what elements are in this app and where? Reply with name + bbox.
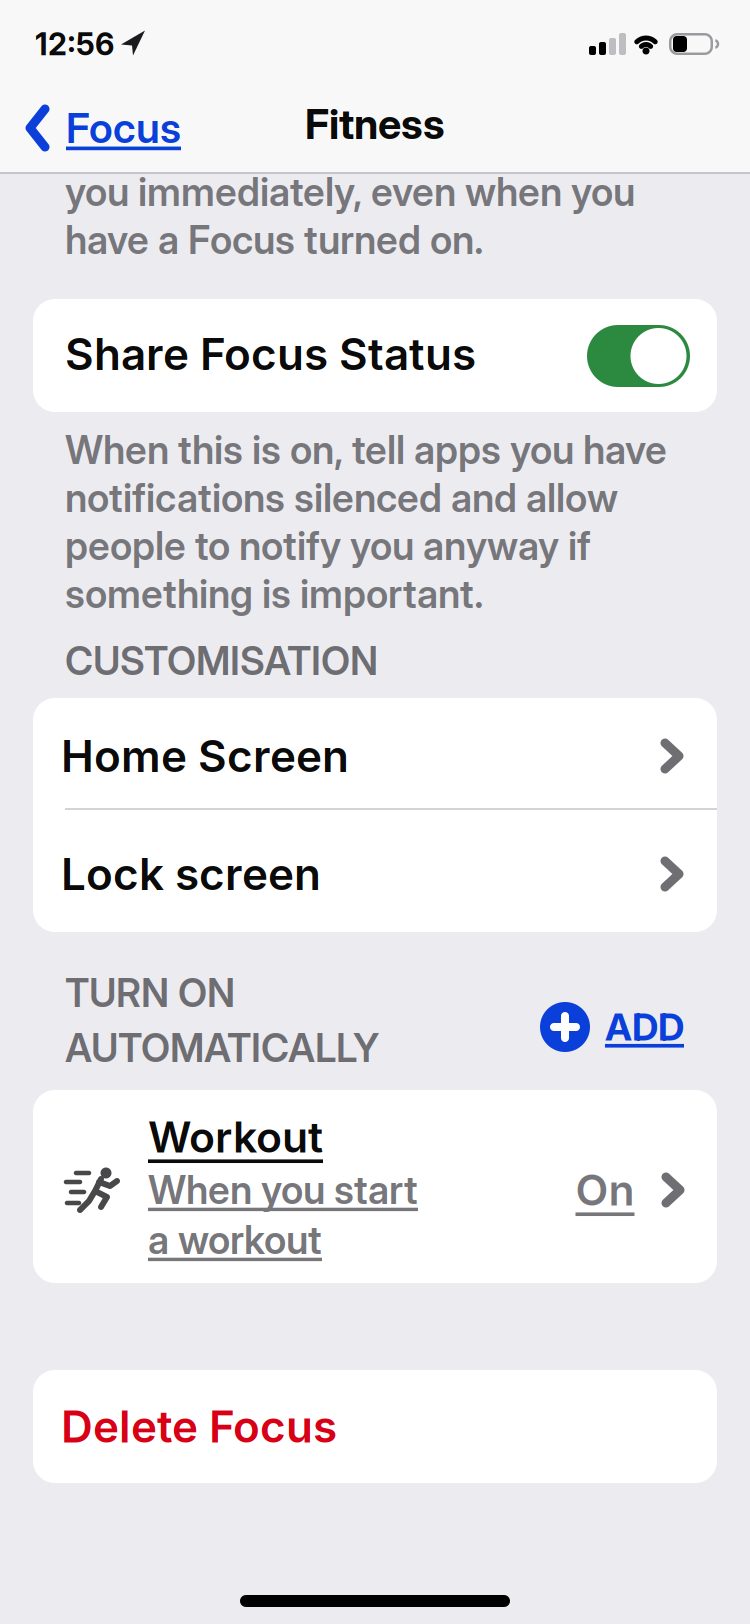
staticText: TURN ON bbox=[65, 970, 235, 1016]
staticText: On bbox=[575, 1165, 634, 1215]
button[interactable]: Lock screen bbox=[33, 814, 717, 934]
staticText: something is important. bbox=[65, 571, 484, 617]
staticText: Fitness bbox=[305, 100, 445, 148]
button[interactable]: Back bbox=[25, 104, 181, 152]
staticText: Delete Focus bbox=[61, 1400, 337, 1452]
button[interactable]: Home Screen bbox=[33, 702, 717, 810]
staticText: notifications silenced and allow bbox=[65, 475, 618, 521]
staticText: AUTOMATICALLY bbox=[65, 1025, 379, 1071]
staticText: CUSTOMISATION bbox=[65, 638, 378, 684]
button[interactable]: Share Focus Status bbox=[587, 325, 690, 387]
button[interactable]: Delete Focus bbox=[33, 1370, 717, 1483]
staticText: people to notify you anyway if bbox=[65, 523, 591, 569]
staticText: Home Screen bbox=[61, 730, 349, 782]
staticText: have a Focus turned on. bbox=[65, 217, 484, 263]
staticText: ADD bbox=[605, 1005, 684, 1049]
button[interactable]: ADD bbox=[540, 1002, 684, 1052]
staticText: When this is on, tell apps you have bbox=[65, 427, 667, 473]
staticText: Share Focus Status bbox=[65, 328, 476, 380]
staticText: you immediately, even when you bbox=[65, 169, 635, 215]
staticText: Lock screen bbox=[61, 848, 321, 900]
staticText: Workout bbox=[148, 1112, 323, 1162]
staticText: Focus bbox=[66, 104, 181, 152]
staticText: a workout bbox=[148, 1217, 322, 1263]
staticText: When you start bbox=[148, 1167, 418, 1213]
button[interactable]: Workout bbox=[33, 1090, 717, 1283]
staticText: 12:56 bbox=[35, 26, 114, 62]
